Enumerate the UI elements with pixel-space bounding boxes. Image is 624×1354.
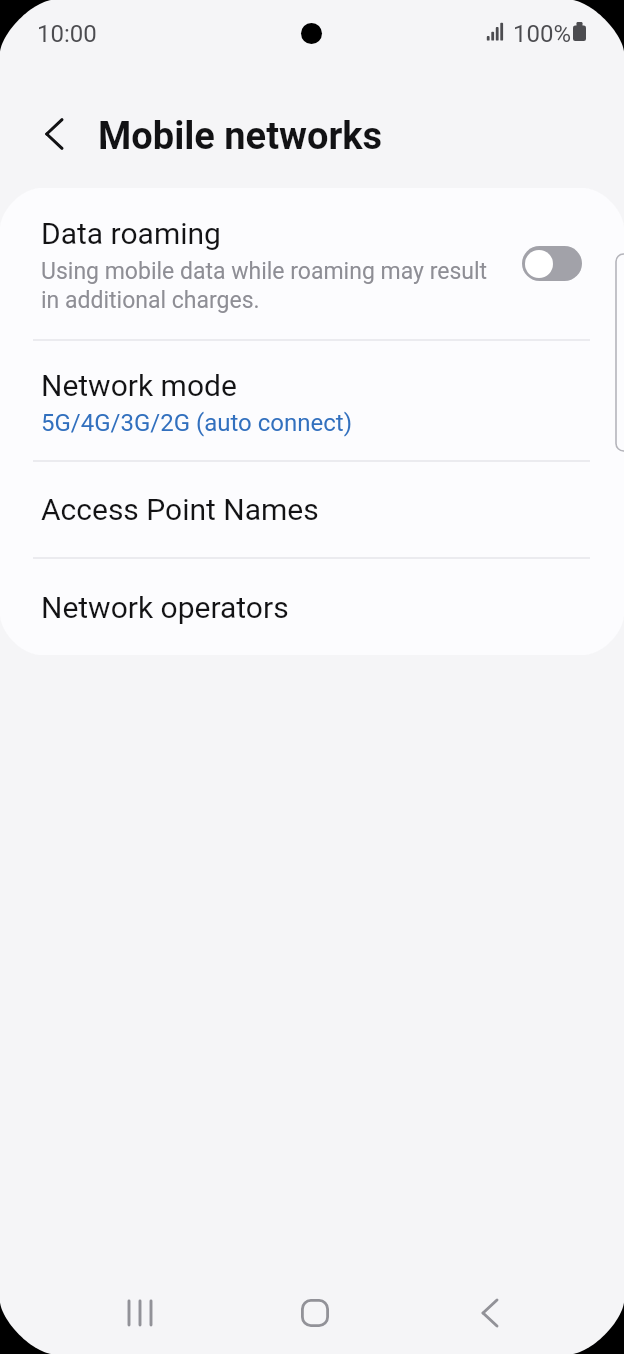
button[interactable]: Back bbox=[442, 1250, 538, 1354]
button[interactable]: Recent apps bbox=[92, 1250, 188, 1354]
button[interactable]: Network mode bbox=[0, 341, 624, 460]
staticText: 10:00 bbox=[37, 20, 97, 48]
button[interactable]: Home bbox=[267, 1250, 363, 1354]
button[interactable]: Access Point Names bbox=[0, 462, 624, 557]
staticText: Access Point Names bbox=[41, 492, 319, 527]
button[interactable]: Network operators bbox=[0, 559, 624, 655]
staticText: Network mode bbox=[41, 368, 237, 403]
staticText: Network operators bbox=[41, 590, 289, 625]
button[interactable]: Navigate up bbox=[26, 106, 82, 162]
button[interactable]: Data roaming, off bbox=[522, 246, 582, 281]
staticText: 5G/4G/3G/2G (auto connect) bbox=[41, 409, 353, 437]
staticText: 100% bbox=[513, 20, 572, 48]
button[interactable]: Data roaming bbox=[0, 188, 624, 339]
staticText: Mobile networks bbox=[98, 114, 383, 159]
staticText: Using mobile data while roaming may resu… bbox=[41, 258, 496, 314]
staticText: Data roaming bbox=[41, 216, 221, 251]
